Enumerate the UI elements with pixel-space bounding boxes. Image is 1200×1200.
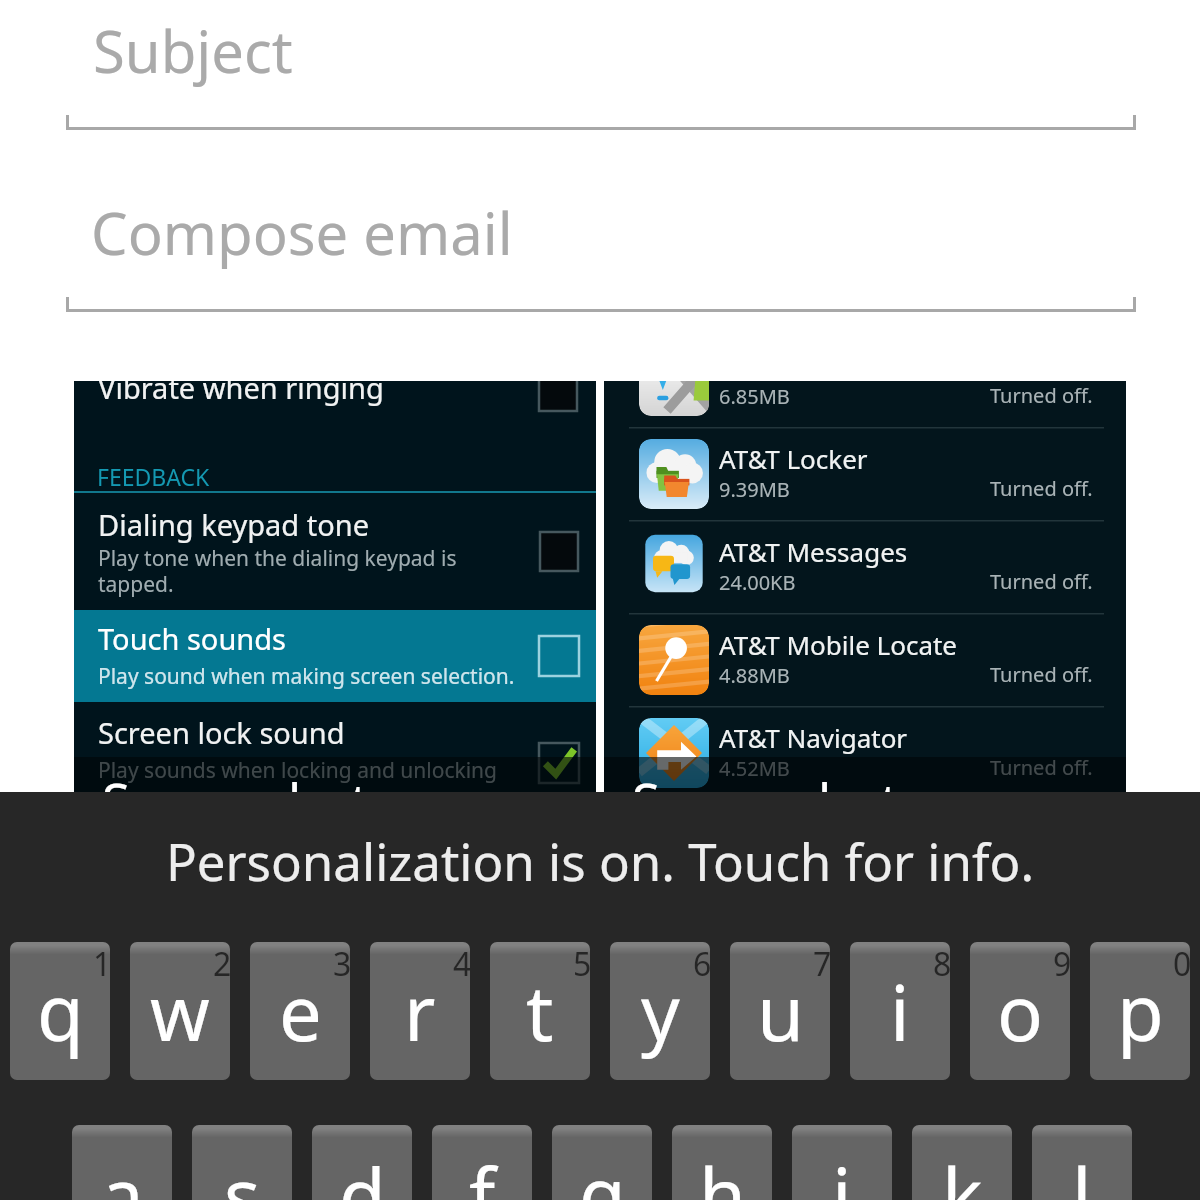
staticText: o [997,960,1043,1064]
staticText: q [37,960,84,1064]
staticText: Subject [93,11,293,90]
staticText: 7 [813,942,830,986]
staticText: d [339,1143,386,1200]
staticText: Play sound when making screen selection. [98,662,515,691]
button[interactable]: 0 [1090,942,1190,1080]
staticText: Screenshot [632,766,899,792]
staticText: 4 [453,942,470,986]
button[interactable]: a [72,1125,172,1200]
button[interactable]: 1 [10,942,110,1080]
staticText: Dialing keypad tone [98,505,370,544]
staticText: Vibrate when ringing [98,381,384,407]
button[interactable]: 8 [850,942,950,1080]
staticText: k [942,1143,983,1200]
staticText: h [699,1143,746,1200]
staticText: AT&T Navigator [719,720,908,755]
button[interactable]: Screenshot attachment 2 [604,381,1126,792]
staticText: FEEDBACK [97,461,210,492]
staticText: e [279,960,322,1064]
button[interactable]: k [912,1125,1012,1200]
staticText: a [101,1143,144,1200]
staticText: AT&T Messages [719,534,908,569]
staticText: 9.39MB [719,476,790,503]
button[interactable]: 7 [730,942,830,1080]
staticText: Personalization is on. Touch for info. [0,826,1200,895]
button[interactable]: Subject [66,0,1136,130]
staticText: g [579,1143,626,1200]
button[interactable]: f [432,1125,532,1200]
staticText: 0 [1173,942,1190,986]
staticText: 2 [213,942,230,986]
button[interactable]: h [672,1125,772,1200]
button[interactable]: 6 [610,942,710,1080]
staticText: AT&T Locker [719,441,868,476]
button[interactable]: 3 [250,942,350,1080]
staticText: s [224,1143,261,1200]
staticText: 9 [1053,942,1070,986]
staticText: Turned off. [990,382,1093,409]
staticText: p [1117,960,1164,1064]
staticText: 6 [693,942,710,986]
staticText: 24.00KB [719,569,796,596]
staticText: j [832,1143,852,1200]
staticText: y [641,960,680,1064]
button[interactable]: 9 [970,942,1070,1080]
staticText: 6.85MB [719,383,790,410]
button[interactable]: 5 [490,942,590,1080]
staticText: Touch sounds [98,619,286,658]
button[interactable]: Compose email [66,182,1136,312]
staticText: AT&T Mobile Locate [719,627,958,662]
staticText: u [757,960,804,1064]
staticText: Screenshot [102,766,369,792]
staticText: w [150,960,210,1064]
staticText: Play sounds when locking and unlocking [98,756,497,785]
button[interactable]: 2 [130,942,230,1080]
staticText: r [404,960,436,1064]
staticText: Turned off. [990,568,1093,595]
staticText: Turned off. [990,475,1093,502]
button[interactable]: s [192,1125,292,1200]
staticText: l [1072,1143,1092,1200]
staticText: 3 [333,942,350,986]
staticText: 5 [573,942,590,986]
staticText: Screen lock sound [98,713,345,752]
button[interactable]: j [792,1125,892,1200]
button[interactable]: g [552,1125,652,1200]
staticText: Play tone when the dialing keypad is tap… [98,544,457,599]
button[interactable]: l [1032,1125,1132,1200]
staticText: 1 [93,942,110,986]
button[interactable]: Personalization is on. Touch for info. [0,792,1200,932]
staticText: 8 [933,942,950,986]
button[interactable]: 4 [370,942,470,1080]
staticText: 4.52MB [719,755,790,782]
staticText: Turned off. [990,754,1093,781]
staticText: t [526,960,554,1064]
staticText: Compose email [91,193,513,272]
staticText: f [469,1143,496,1200]
button[interactable]: Screenshot attachment 1 [74,381,596,792]
staticText: 4.88MB [719,662,790,689]
staticText: i [890,960,910,1064]
button[interactable]: d [312,1125,412,1200]
staticText: Turned off. [990,661,1093,688]
